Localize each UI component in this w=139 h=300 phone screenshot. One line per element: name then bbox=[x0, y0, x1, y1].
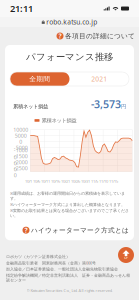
staticText: robo.katsu.co.jp bbox=[46, 18, 97, 26]
button[interactable]: ? bbox=[0, 27, 139, 45]
staticText: ※運用成績は、お客様の運用開始日からの累積値を表示しています。 bbox=[10, 191, 125, 201]
button[interactable]: 全期間 bbox=[10, 72, 69, 86]
staticText: -3,573 bbox=[91, 97, 121, 111]
staticText: 累積ネット損益 bbox=[41, 117, 76, 124]
staticText: -25000 bbox=[14, 165, 28, 179]
staticText: 10/1 10/6 10/11 10/16 10/21 10/26 10/31 … bbox=[25, 179, 118, 184]
staticText: ロボカツ（カツテン証券株式会社） bbox=[6, 254, 70, 259]
staticText: 加入協会／日本証券業協会、一般社団法人金融先物取引業協会 bbox=[6, 267, 118, 272]
staticText: 2021 bbox=[91, 75, 107, 83]
staticText: 21:11 bbox=[10, 2, 33, 15]
staticText: 金融商品取引業者 関東財務局長（金商）第000号 bbox=[6, 260, 96, 265]
staticText: 円 bbox=[121, 103, 126, 110]
staticText: 0 bbox=[19, 138, 22, 145]
staticText: -5000 bbox=[14, 144, 28, 151]
staticText: 各項目の詳細について bbox=[65, 32, 135, 40]
staticText: 指定紛争解決機関／特定非営利活動法人 証券・金融商品あっせん相談センター bbox=[6, 273, 130, 283]
staticText: ハイウォーターマーク方式とは bbox=[31, 226, 129, 234]
staticText: パフォーマンス推移 bbox=[26, 51, 113, 63]
staticText: -15000 bbox=[14, 153, 28, 167]
staticText: ? bbox=[24, 226, 27, 235]
staticText: 10000 bbox=[13, 126, 28, 133]
button[interactable]: Back to top bbox=[118, 247, 134, 263]
staticText: -20000 bbox=[14, 159, 28, 173]
staticText: © Katsuten Securities Co., Ltd. All righ… bbox=[26, 288, 112, 293]
staticText: ? bbox=[58, 32, 61, 40]
staticText: ※ハイウォーターマーク方式により算出した概算値となります。 bbox=[10, 202, 125, 207]
staticText: 5000 bbox=[15, 132, 27, 139]
staticText: 全期間 bbox=[29, 75, 50, 83]
staticText: ※実際のお取引結果とは異なる場合がございますのでご了承ください。 bbox=[10, 208, 129, 218]
button[interactable]: ? bbox=[5, 218, 134, 240]
button[interactable]: 2021 bbox=[69, 72, 129, 86]
staticText: TOP bbox=[123, 256, 128, 260]
staticText: 累積ネット損益 bbox=[13, 103, 48, 110]
staticText: -10000 bbox=[14, 147, 28, 161]
